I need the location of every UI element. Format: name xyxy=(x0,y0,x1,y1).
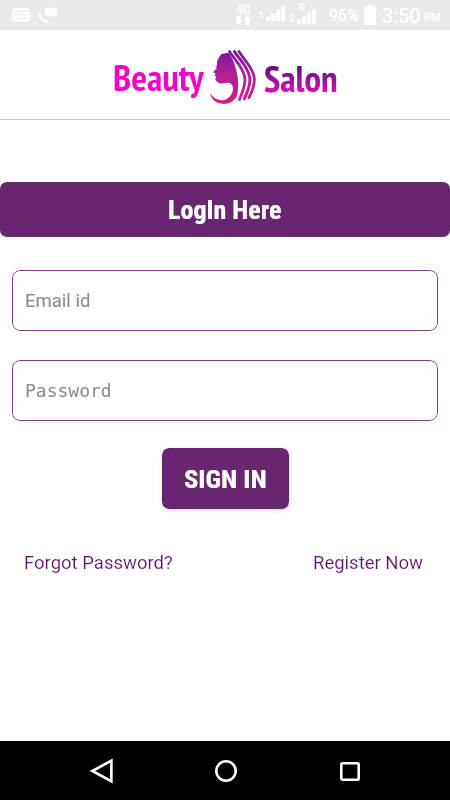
staticText: 96% xyxy=(329,6,359,25)
staticText: 3:50 xyxy=(382,4,421,27)
staticText: PM xyxy=(424,11,441,24)
staticText: Salon xyxy=(264,54,338,102)
button[interactable]: SIGN IN xyxy=(162,448,289,509)
staticText: Beauty xyxy=(113,53,204,101)
staticText: Forgot Password? xyxy=(24,552,173,574)
button[interactable]: Forgot Password? xyxy=(24,552,173,574)
button[interactable]: Register Now xyxy=(313,552,424,574)
staticText: Email id xyxy=(25,290,91,312)
button[interactable]: Home xyxy=(203,751,249,791)
staticText: SIGN IN xyxy=(184,463,267,494)
staticText: Password xyxy=(25,380,112,401)
button[interactable]: Back xyxy=(79,751,125,791)
button[interactable]: Password xyxy=(12,360,438,421)
staticText: R xyxy=(299,2,306,14)
button[interactable]: LogIn Here xyxy=(0,182,450,237)
staticText: LogIn Here xyxy=(168,195,282,225)
staticText: 1 xyxy=(259,11,265,22)
staticText: 4G xyxy=(236,3,251,17)
button[interactable]: Recents xyxy=(327,751,373,791)
button[interactable]: Email id xyxy=(12,270,438,331)
staticText: Register Now xyxy=(313,552,424,574)
staticText: 2 xyxy=(290,13,296,24)
